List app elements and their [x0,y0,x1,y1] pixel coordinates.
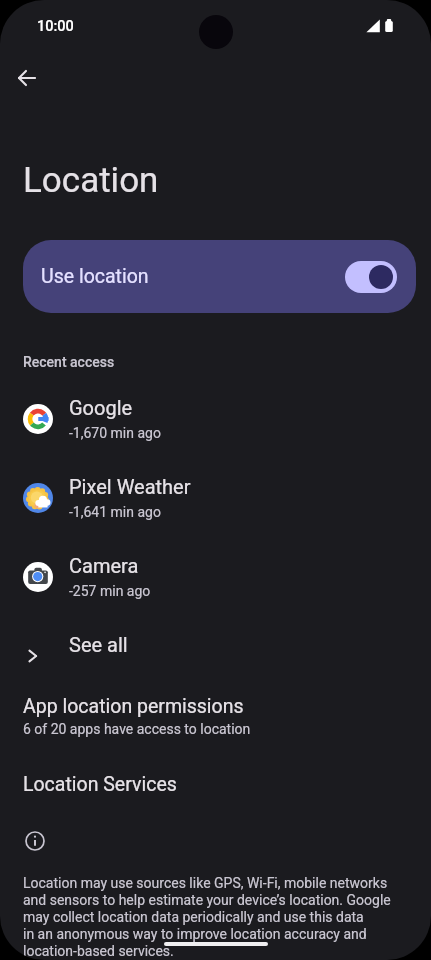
staticText: See all [69,633,128,656]
staticText: Pixel Weather [69,475,191,498]
staticText: -1,641 min ago [69,504,161,520]
button[interactable]: App location permissions [0,688,431,747]
staticText: Location [23,160,159,201]
button[interactable]: Google [0,376,431,455]
staticText: 6 of 20 apps have access to location [23,721,251,737]
staticText: Use location [41,265,149,288]
staticText: -257 min ago [69,583,151,599]
staticText: Recent access [23,354,115,370]
button[interactable]: Back [3,54,51,102]
staticText: App location permissions [23,695,244,718]
button[interactable]: Location Services [0,764,431,804]
staticText: 10:00 [37,18,74,35]
button[interactable]: Use location [23,240,416,313]
staticText: -1,670 min ago [69,425,161,441]
other: Information [25,831,45,851]
button[interactable]: See all [0,613,431,692]
staticText: Location Services [23,773,177,796]
button[interactable]: Pixel Weather [0,455,431,534]
staticText: Location may use sources like GPS, Wi-Fi… [23,875,423,960]
staticText: Camera [69,554,139,577]
button[interactable]: Camera [0,534,431,613]
staticText: Google [69,396,133,419]
